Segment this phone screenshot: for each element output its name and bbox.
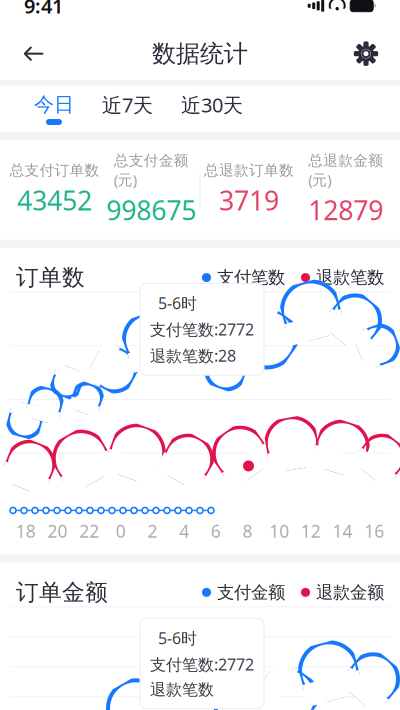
staticText: 10 (269, 519, 289, 542)
staticText: 5-6时 (158, 292, 197, 314)
staticText: 总支付订单数 (9, 161, 99, 179)
button[interactable]: Settings (344, 32, 388, 76)
staticText: 9:41 (24, 0, 63, 19)
staticText: 支付笔数:2772 (150, 654, 254, 675)
staticText: 5-6时 (158, 627, 197, 648)
staticText: 总退款金额(元) (308, 152, 383, 189)
staticText: 今日 (34, 92, 74, 117)
staticText: 支付笔数 (217, 267, 285, 288)
staticText: 订单金额 (16, 578, 108, 606)
staticText: 14 (332, 519, 352, 542)
staticText: 2 (147, 519, 157, 542)
staticText: 6 (211, 519, 221, 542)
staticText: 12 (301, 519, 321, 542)
staticText: 22 (79, 519, 99, 542)
button[interactable]: 今日 (20, 86, 88, 132)
staticText: 18 (16, 519, 36, 542)
staticText: 支付金额 (217, 582, 285, 603)
staticText: 8 (242, 519, 252, 542)
staticText: 近7天 (102, 91, 153, 118)
staticText: 16 (364, 519, 384, 542)
staticText: 0 (116, 519, 126, 542)
staticText: 43452 (17, 182, 92, 218)
staticText: 近30天 (181, 91, 243, 118)
staticText: 退款笔数 (316, 267, 384, 288)
button[interactable]: 近7天 (88, 86, 167, 132)
staticText: 4 (179, 519, 189, 542)
staticText: 20 (47, 519, 67, 542)
button[interactable]: 近30天 (167, 86, 257, 132)
staticText: 订单数 (16, 264, 85, 291)
staticText: 退款笔数 (150, 680, 214, 699)
staticText: 3719 (219, 182, 279, 218)
staticText: 998675 (106, 192, 196, 228)
staticText: 数据统计 (152, 39, 248, 68)
staticText: 退款笔数:28 (150, 345, 236, 366)
staticText: 退款金额 (316, 582, 384, 603)
button[interactable]: Back (12, 32, 56, 76)
staticText: 总支付金额(元) (114, 152, 189, 189)
staticText: 12879 (308, 192, 383, 228)
staticText: 总退款订单数 (204, 161, 294, 179)
staticText: 支付笔数:2772 (150, 319, 254, 340)
